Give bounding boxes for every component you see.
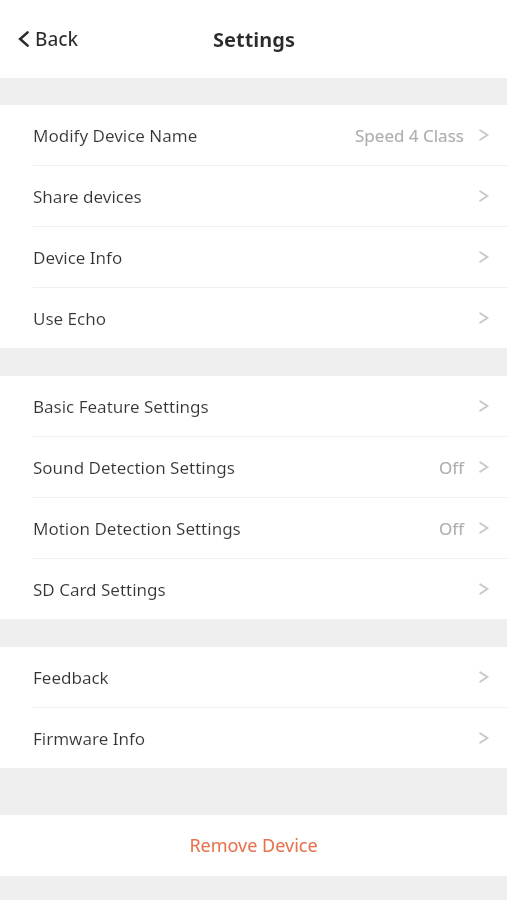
button[interactable]: Share devices — [0, 166, 507, 226]
staticText: Off — [439, 456, 464, 479]
button[interactable]: Sound Detection Settings — [0, 437, 507, 497]
staticText: Speed 4 Class — [355, 124, 464, 147]
staticText: Use Echo — [33, 307, 106, 330]
staticText: SD Card Settings — [33, 578, 166, 601]
button[interactable]: Use Echo — [0, 288, 507, 348]
staticText: Modify Device Name — [33, 124, 198, 147]
staticText: Share devices — [33, 185, 142, 208]
button[interactable]: Device Info — [0, 227, 507, 287]
button[interactable]: Modify Device Name — [0, 105, 507, 165]
staticText: Sound Detection Settings — [33, 456, 235, 479]
staticText: Basic Feature Settings — [33, 395, 209, 418]
button[interactable]: Basic Feature Settings — [0, 376, 507, 436]
staticText: Back — [35, 26, 79, 52]
staticText: Motion Detection Settings — [33, 517, 241, 540]
staticText: Device Info — [33, 246, 123, 269]
staticText: Firmware Info — [33, 727, 146, 750]
staticText: Off — [439, 517, 464, 540]
button[interactable]: Remove Device — [0, 815, 507, 876]
staticText: Settings — [213, 26, 295, 53]
button[interactable]: Firmware Info — [0, 708, 507, 768]
button[interactable]: Feedback — [0, 647, 507, 707]
button[interactable]: SD Card Settings — [0, 559, 507, 619]
staticText: Feedback — [33, 666, 109, 689]
button[interactable]: Motion Detection Settings — [0, 498, 507, 558]
button[interactable]: Back — [16, 18, 81, 60]
staticText: Remove Device — [189, 833, 318, 858]
